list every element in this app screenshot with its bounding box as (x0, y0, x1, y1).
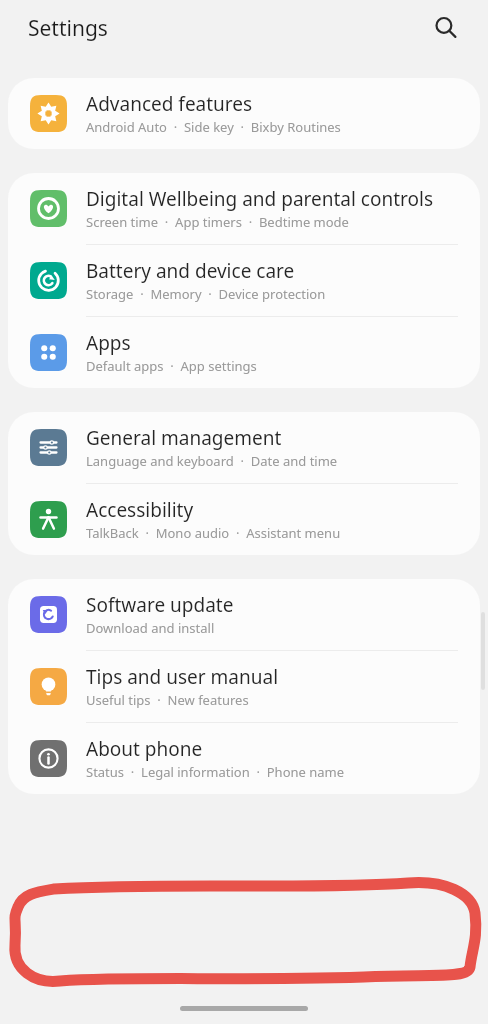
staticText: Accessibility (86, 497, 194, 523)
button[interactable]: Tips and user manual (8, 651, 480, 722)
button[interactable]: General management (8, 412, 480, 483)
staticText: General management (86, 425, 282, 451)
staticText: Software update (86, 592, 234, 618)
staticText: Default apps · App settings (86, 357, 257, 375)
staticText: About phone (86, 736, 203, 762)
staticText: Useful tips · New features (86, 691, 249, 709)
button[interactable]: Advanced features (8, 78, 480, 149)
staticText: TalkBack · Mono audio · Assistant menu (86, 524, 341, 542)
button[interactable]: Apps (8, 317, 480, 388)
button[interactable]: Search (426, 8, 466, 48)
staticText: Apps (86, 330, 131, 356)
button[interactable]: Digital Wellbeing and parental controls (8, 173, 480, 244)
staticText: Screen time · App timers · Bedtime mode (86, 213, 349, 231)
staticText: Language and keyboard · Date and time (86, 452, 338, 470)
staticText: Settings (28, 14, 108, 43)
staticText: Battery and device care (86, 258, 295, 284)
button[interactable]: Accessibility (8, 484, 480, 555)
button[interactable]: Battery and device care (8, 245, 480, 316)
staticText: Status · Legal information · Phone name (86, 763, 345, 781)
staticText: Storage · Memory · Device protection (86, 285, 326, 303)
staticText: Digital Wellbeing and parental controls (86, 186, 434, 212)
staticText: Android Auto · Side key · Bixby Routines (86, 118, 341, 136)
button[interactable]: Software update (8, 579, 480, 650)
staticText: Download and install (86, 619, 215, 637)
staticText: Tips and user manual (86, 664, 279, 690)
staticText: Advanced features (86, 91, 253, 117)
button[interactable]: About phone (8, 723, 480, 794)
